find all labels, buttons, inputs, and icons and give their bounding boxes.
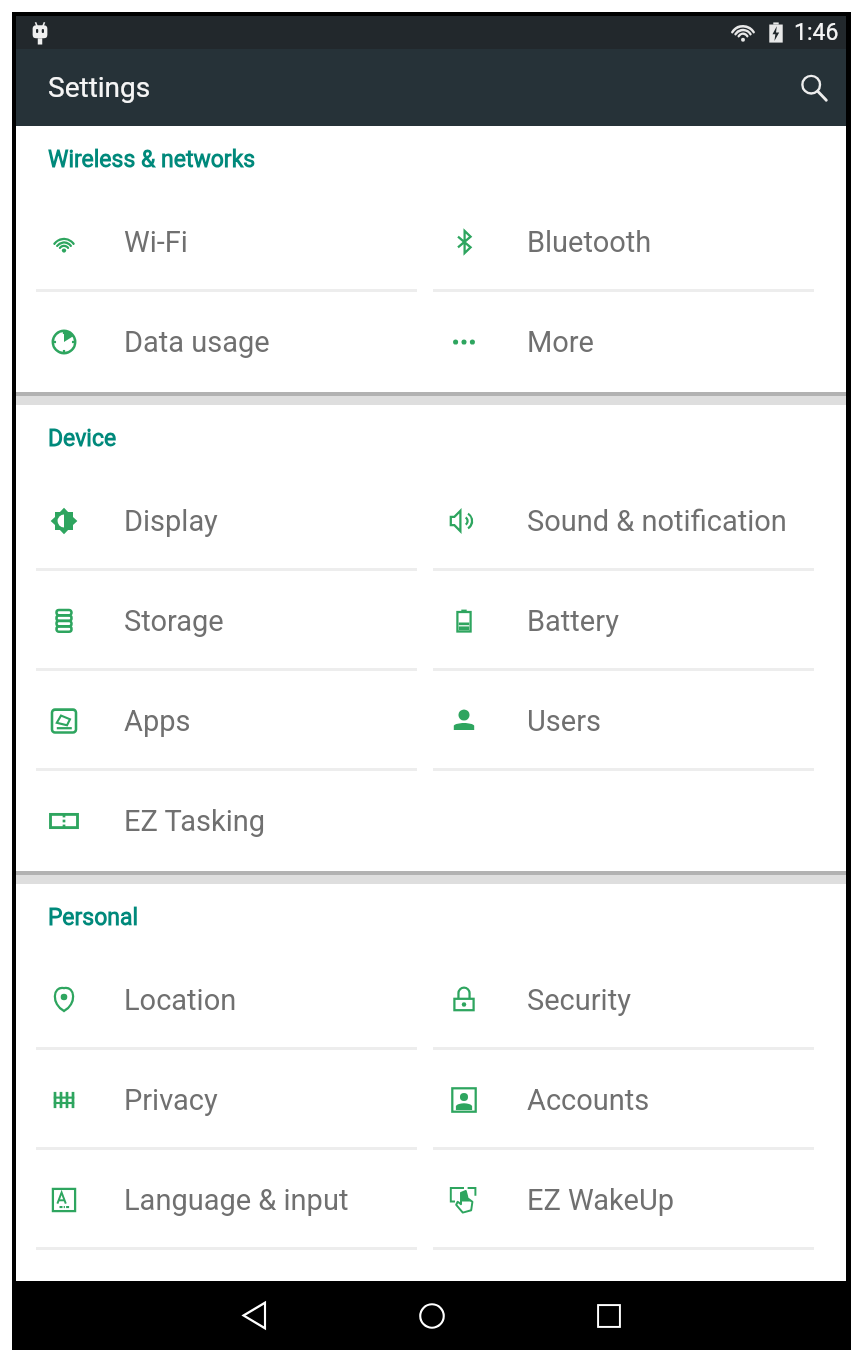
button[interactable]: Battery (431, 571, 846, 671)
button[interactable]: Language & input (16, 1150, 431, 1250)
staticText: Sound & notification (527, 504, 787, 538)
button[interactable]: Users (431, 671, 846, 771)
staticText: EZ Tasking (124, 804, 265, 838)
button[interactable]: Wi-Fi (16, 192, 431, 292)
staticText: Privacy (124, 1083, 218, 1117)
button[interactable]: Search (786, 60, 842, 116)
staticText: Accounts (527, 1083, 650, 1117)
staticText: More (527, 325, 594, 359)
staticText: Security (527, 983, 631, 1017)
button[interactable]: Bluetooth (431, 192, 846, 292)
staticText: Battery (527, 604, 619, 638)
button[interactable]: Data usage (16, 292, 431, 392)
button[interactable]: EZ WakeUp (431, 1150, 846, 1250)
button[interactable]: Apps (16, 671, 431, 771)
staticText: Location (124, 983, 237, 1017)
staticText: Language & input (124, 1183, 349, 1217)
staticText: Wi-Fi (124, 225, 188, 259)
button[interactable]: Storage (16, 571, 431, 671)
button[interactable]: Location (16, 950, 431, 1050)
staticText: Storage (124, 604, 224, 638)
button[interactable]: More (431, 292, 846, 392)
staticText: EZ WakeUp (527, 1183, 674, 1217)
button[interactable]: Sound & notification (431, 471, 846, 571)
button[interactable]: Security (431, 950, 846, 1050)
staticText: Display (124, 504, 218, 538)
staticText: 1:46 (794, 19, 839, 46)
button[interactable]: Accounts (431, 1050, 846, 1150)
staticText: Personal (48, 904, 139, 931)
staticText: Settings (48, 71, 151, 104)
button[interactable]: Back (220, 1281, 289, 1350)
button[interactable]: Recents (574, 1281, 643, 1350)
button[interactable]: EZ Tasking (16, 771, 431, 871)
button[interactable]: Home (397, 1281, 466, 1350)
button[interactable]: Display (16, 471, 431, 571)
staticText: Device (48, 425, 117, 452)
staticText: Apps (124, 704, 191, 738)
staticText: Bluetooth (527, 225, 652, 259)
staticText: Wireless & networks (48, 146, 256, 173)
staticText: Users (527, 704, 601, 738)
staticText: Data usage (124, 325, 270, 359)
button[interactable]: Privacy (16, 1050, 431, 1150)
